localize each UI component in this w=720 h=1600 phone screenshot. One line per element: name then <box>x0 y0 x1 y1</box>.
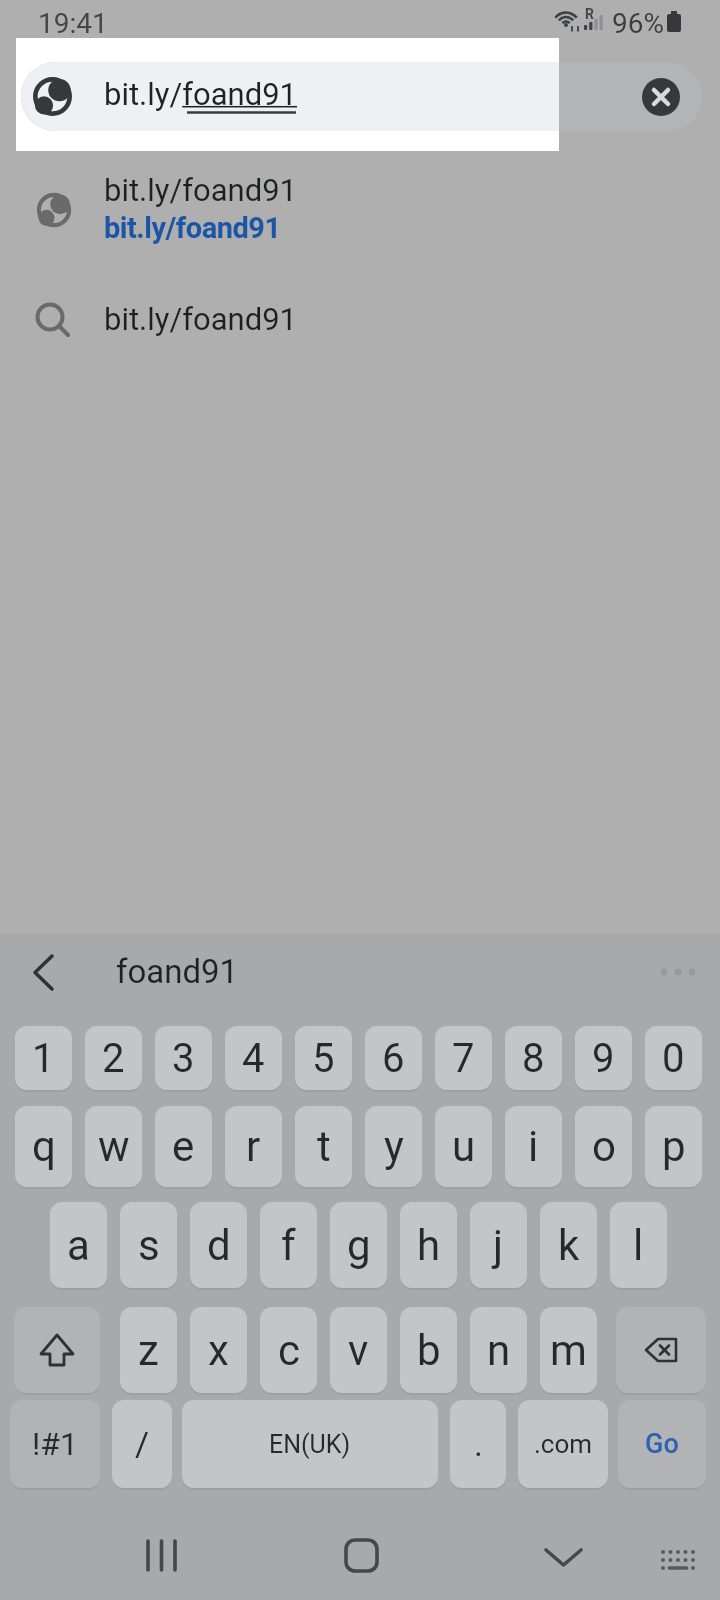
staticText: !#1 <box>32 1425 78 1463</box>
staticText: f <box>281 1221 296 1270</box>
button[interactable] <box>648 1530 708 1580</box>
button[interactable]: p <box>645 1106 702 1187</box>
button[interactable]: d <box>190 1202 247 1288</box>
staticText: 3 <box>172 1035 195 1082</box>
staticText: n <box>487 1326 511 1375</box>
staticText: . <box>474 1424 483 1464</box>
button[interactable] <box>330 1520 394 1584</box>
staticText: z <box>138 1326 159 1375</box>
staticText: bit.ly/foand91 <box>104 76 298 112</box>
button[interactable]: bit.ly/foand91 <box>0 298 720 346</box>
button[interactable] <box>18 948 68 998</box>
staticText: y <box>384 1122 404 1171</box>
button[interactable]: a <box>50 1202 107 1288</box>
button[interactable]: s <box>120 1202 177 1288</box>
staticText: 6 <box>382 1035 405 1082</box>
button[interactable]: u <box>435 1106 492 1187</box>
button[interactable]: m <box>540 1307 597 1393</box>
button[interactable]: w <box>85 1106 142 1187</box>
button[interactable]: EN(UK) <box>182 1400 438 1488</box>
staticText: w <box>98 1122 130 1171</box>
staticText: b <box>417 1326 441 1375</box>
button[interactable]: v <box>330 1307 387 1393</box>
button[interactable]: j <box>470 1202 527 1288</box>
button[interactable]: bit.ly/foand91 <box>0 165 720 257</box>
staticText: 9 <box>592 1035 615 1082</box>
button[interactable]: / <box>112 1400 172 1488</box>
button[interactable]: 0 <box>645 1026 702 1090</box>
button[interactable]: g <box>330 1202 387 1288</box>
button[interactable]: k <box>540 1202 597 1288</box>
button[interactable]: !#1 <box>10 1400 100 1488</box>
staticText: 19:41 <box>38 7 108 40</box>
button[interactable]: z <box>120 1307 177 1393</box>
staticText: l <box>633 1221 644 1270</box>
staticText: 8 <box>522 1035 545 1082</box>
button[interactable]: f <box>260 1202 317 1288</box>
staticText: 1 <box>32 1035 55 1082</box>
button[interactable]: 5 <box>295 1026 352 1090</box>
button[interactable]: l <box>610 1202 667 1288</box>
staticText: a <box>67 1221 90 1270</box>
staticText: k <box>558 1221 580 1270</box>
button[interactable]: 2 <box>85 1026 142 1090</box>
staticText: d <box>207 1221 231 1270</box>
staticText: h <box>417 1221 441 1270</box>
button[interactable] <box>130 1520 194 1584</box>
staticText: / <box>135 1424 150 1464</box>
staticText: v <box>348 1326 369 1375</box>
staticText: 0 <box>662 1035 685 1082</box>
button[interactable]: 1 <box>15 1026 72 1090</box>
staticText: m <box>550 1326 587 1375</box>
button[interactable]: r <box>225 1106 282 1187</box>
button[interactable]: .com <box>518 1400 608 1488</box>
staticText: x <box>208 1326 229 1375</box>
staticText: i <box>528 1122 539 1171</box>
staticText: q <box>32 1122 56 1171</box>
staticText: Go <box>645 1428 679 1460</box>
button[interactable]: 9 <box>575 1026 632 1090</box>
button[interactable]: t <box>295 1106 352 1187</box>
button[interactable]: Go <box>618 1400 706 1488</box>
button[interactable] <box>616 1307 706 1393</box>
staticText: 2 <box>102 1035 125 1082</box>
button[interactable]: 8 <box>505 1026 562 1090</box>
staticText: .com <box>534 1429 593 1459</box>
button[interactable]: x <box>190 1307 247 1393</box>
button[interactable]: b <box>400 1307 457 1393</box>
button[interactable]: 4 <box>225 1026 282 1090</box>
staticText: r <box>246 1122 261 1171</box>
button[interactable]: 6 <box>365 1026 422 1090</box>
staticText: j <box>493 1221 504 1270</box>
button[interactable]: q <box>15 1106 72 1187</box>
button[interactable] <box>650 948 706 998</box>
button[interactable]: n <box>470 1307 527 1393</box>
staticText: 96% <box>612 7 664 40</box>
button[interactable]: 7 <box>435 1026 492 1090</box>
staticText: 4 <box>242 1035 265 1082</box>
button[interactable]: o <box>575 1106 632 1187</box>
button[interactable]: e <box>155 1106 212 1187</box>
button[interactable]: h <box>400 1202 457 1288</box>
button[interactable] <box>532 1520 596 1584</box>
staticText: o <box>592 1122 616 1171</box>
button[interactable] <box>637 73 685 121</box>
staticText: g <box>347 1221 371 1270</box>
button[interactable]: c <box>260 1307 317 1393</box>
button[interactable] <box>14 1307 100 1393</box>
staticText: c <box>278 1326 300 1375</box>
staticText: bit.ly/foand91 <box>104 211 281 245</box>
button[interactable]: y <box>365 1106 422 1187</box>
staticText: bit.ly/foand91 <box>104 301 298 337</box>
staticText: u <box>452 1122 476 1171</box>
staticText: t <box>317 1122 331 1171</box>
staticText: R <box>585 6 594 22</box>
button[interactable]: i <box>505 1106 562 1187</box>
staticText: bit.ly/foand91 <box>104 172 298 208</box>
staticText: 5 <box>312 1035 335 1082</box>
staticText: foand91 <box>116 952 239 991</box>
button[interactable]: 3 <box>155 1026 212 1090</box>
staticText: s <box>138 1221 160 1270</box>
button[interactable]: . <box>450 1400 506 1488</box>
button[interactable]: bit.ly/foand91 <box>21 62 702 131</box>
